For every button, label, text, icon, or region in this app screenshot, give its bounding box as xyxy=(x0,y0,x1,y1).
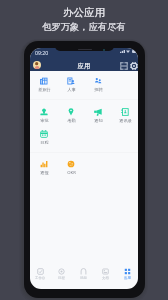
button[interactable]: 通报 xyxy=(31,159,57,175)
button[interactable]: OKR xyxy=(58,159,84,176)
button[interactable]: 人事 xyxy=(58,76,84,92)
staticText: 工作台 xyxy=(35,276,46,280)
staticText: 应用 xyxy=(124,276,131,280)
staticText: 文档 xyxy=(102,276,109,280)
staticText: 日程 xyxy=(40,140,49,145)
staticText: OKR xyxy=(67,170,76,176)
button[interactable]: 日程 xyxy=(51,268,72,280)
button[interactable]: 工作台 xyxy=(30,268,51,280)
button[interactable]: 消息 xyxy=(72,268,94,280)
button[interactable]: 审批 xyxy=(31,107,57,123)
button[interactable]: 招聘 xyxy=(85,76,111,92)
staticText: 应用 xyxy=(30,62,138,70)
staticText: 09:20 xyxy=(35,49,49,56)
button[interactable]: 差旅行 xyxy=(31,76,57,92)
staticText: 通讯录 xyxy=(119,118,132,123)
staticText: 消息 xyxy=(80,276,87,280)
staticText: 差旅行 xyxy=(38,87,51,92)
button[interactable]: 通讯录 xyxy=(112,107,138,123)
staticText: 招聘 xyxy=(94,87,103,92)
staticText: 人事 xyxy=(67,87,76,92)
button[interactable]: Settings xyxy=(130,62,138,70)
staticText: 包罗万象，应有尽有 xyxy=(42,21,126,33)
button[interactable]: Scan xyxy=(120,62,128,70)
button[interactable]: 通知 xyxy=(85,107,111,123)
staticText: 通知 xyxy=(94,118,103,123)
staticText: 办公应用 xyxy=(63,6,105,19)
staticText: 考勤 xyxy=(67,118,76,123)
button[interactable]: Profile xyxy=(33,61,41,69)
button[interactable]: 考勤 xyxy=(58,107,84,123)
staticText: 通报 xyxy=(40,170,49,175)
button[interactable]: 应用 xyxy=(116,268,138,280)
button[interactable]: 日程 xyxy=(31,129,57,145)
staticText: 审批 xyxy=(40,118,49,123)
staticText: 日程 xyxy=(58,276,65,280)
button[interactable]: 文档 xyxy=(94,268,116,280)
